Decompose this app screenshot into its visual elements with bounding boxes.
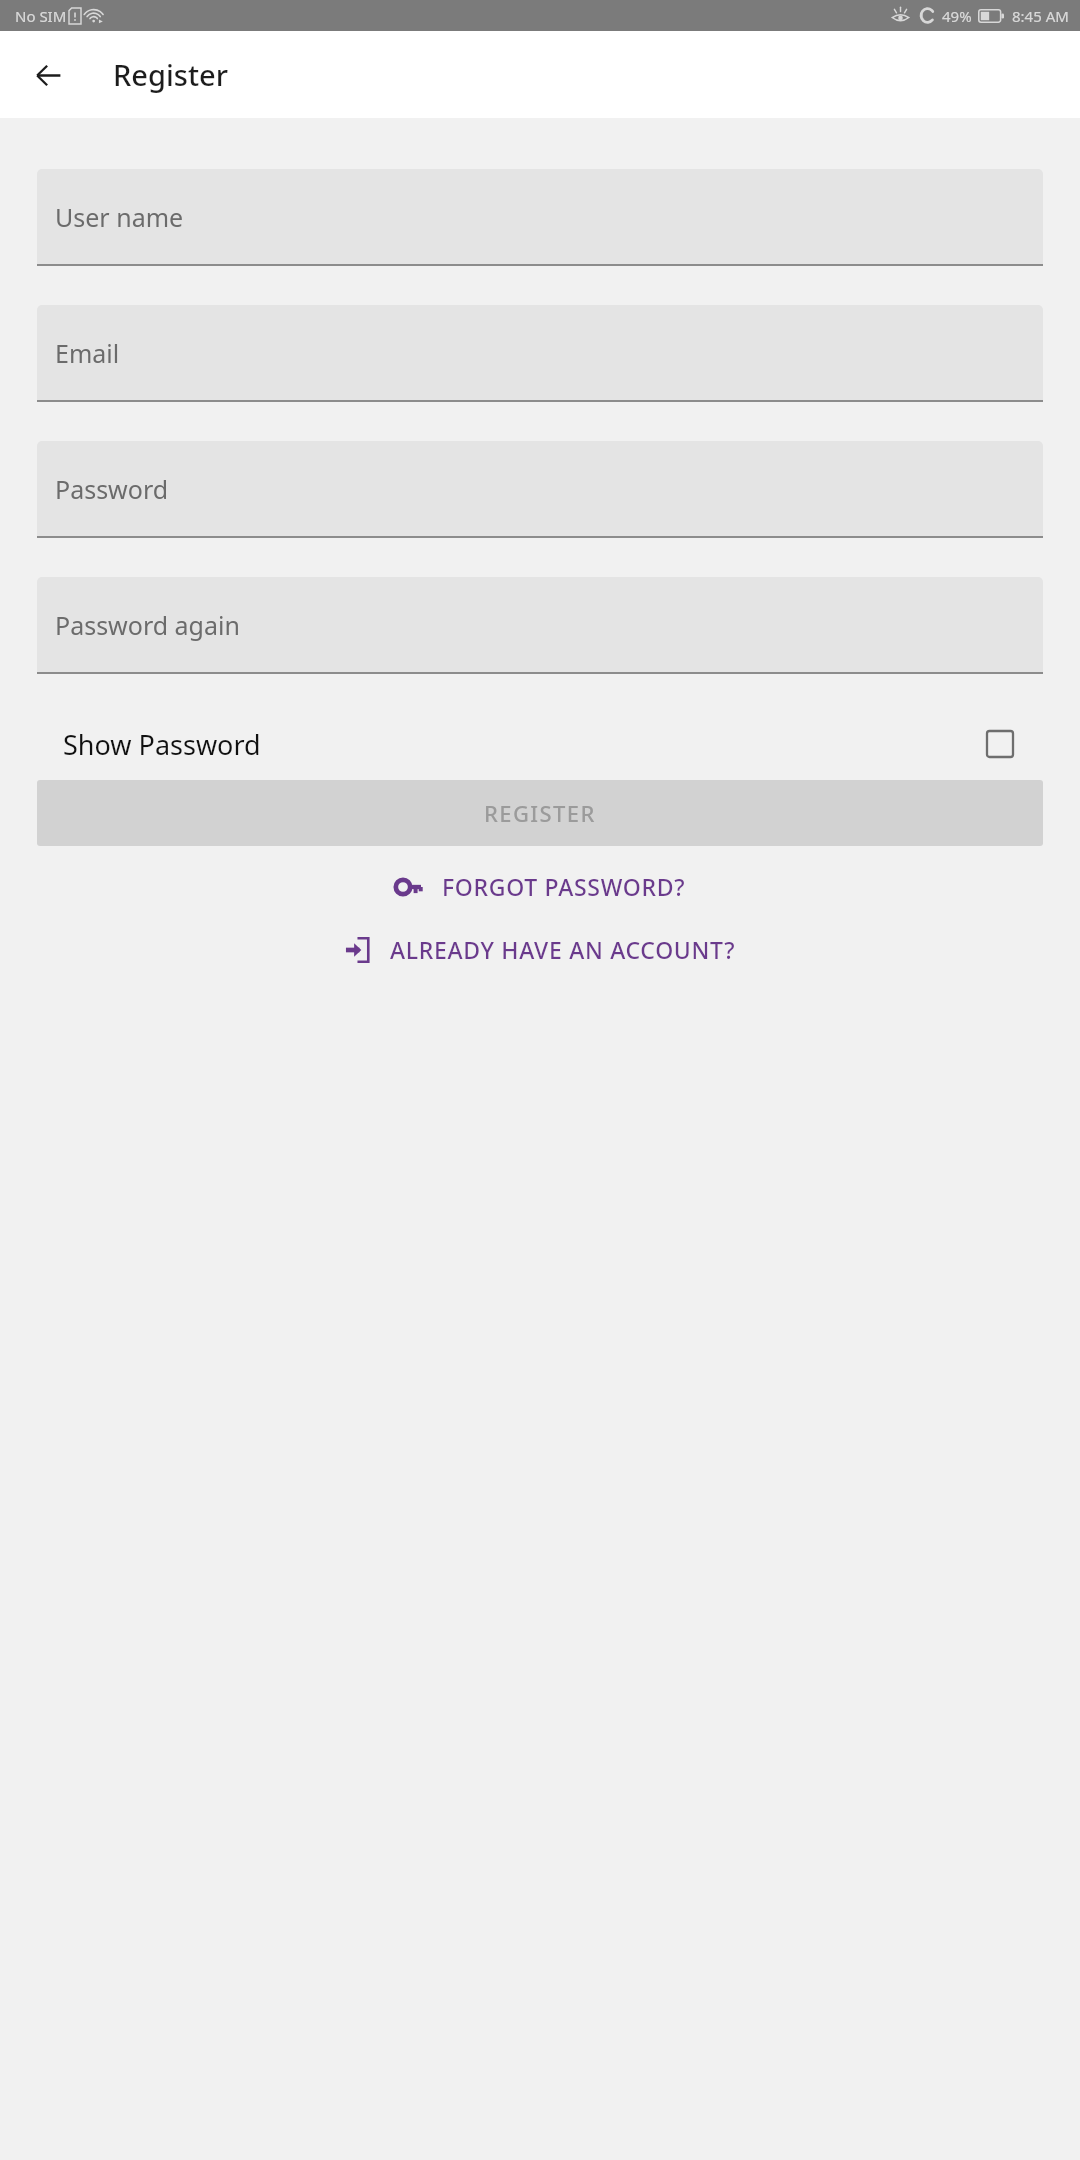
staticText: FORGOT PASSWORD? [442, 871, 686, 902]
staticText: 8:45 AM [1012, 6, 1069, 26]
button[interactable]: Password [37, 441, 1043, 538]
staticText: Show Password [63, 726, 261, 763]
staticText: Password [55, 472, 169, 506]
button[interactable]: Password again [37, 577, 1043, 674]
button[interactable]: Back [20, 47, 76, 103]
button[interactable]: REGISTER [37, 780, 1043, 846]
staticText: 49% [942, 6, 972, 26]
staticText: No SIM [15, 6, 67, 26]
staticText: REGISTER [484, 798, 596, 828]
button[interactable]: Show Password [37, 711, 1043, 777]
button[interactable]: Email [37, 305, 1043, 402]
staticText: Password again [55, 608, 240, 642]
staticText: ALREADY HAVE AN ACCOUNT? [390, 934, 736, 965]
button[interactable]: User name [37, 169, 1043, 266]
button[interactable]: FORGOT PASSWORD? [0, 858, 1080, 915]
staticText: Register [113, 55, 228, 94]
staticText: User name [55, 200, 184, 234]
staticText: Email [55, 336, 120, 370]
button[interactable]: ALREADY HAVE AN ACCOUNT? [0, 921, 1080, 978]
